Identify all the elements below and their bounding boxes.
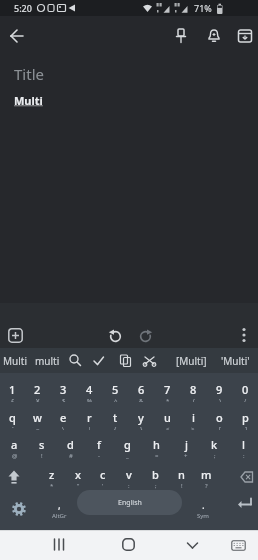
staticText: r [87,410,92,425]
button[interactable]: k [200,430,229,459]
staticText: = [155,452,159,459]
staticText: x [75,467,81,482]
staticText: a [11,437,18,452]
button[interactable]: e [50,402,76,430]
staticText: b [152,467,159,482]
button[interactable] [237,495,257,513]
button[interactable]: , [44,492,74,526]
button[interactable]: i [180,402,206,430]
staticText: 6 [138,382,145,397]
button[interactable]: m [194,459,218,490]
button[interactable]: 2 [25,373,50,402]
staticText: p [242,410,249,425]
button[interactable]: x [66,459,90,490]
staticText: ` [12,425,14,430]
button[interactable] [68,353,83,368]
staticText: g [124,437,131,452]
button[interactable]: h [142,430,171,459]
staticText: ; [155,482,157,490]
button[interactable]: 8 [180,373,206,402]
button[interactable]: r [76,402,102,430]
staticText: m [201,467,212,482]
button[interactable] [142,353,157,368]
staticText: 2 [34,382,41,397]
button[interactable]: l [229,430,258,459]
button[interactable]: w [25,402,50,430]
staticText: f [97,437,101,452]
button[interactable]: 9 [206,373,232,402]
button[interactable] [206,28,222,44]
button[interactable]: [Multi] [176,354,207,368]
button[interactable]: Multi [3,354,28,368]
button[interactable]: q [0,402,25,430]
button[interactable] [91,353,106,368]
button[interactable]: 3 [50,373,76,402]
staticText: 3 [60,382,67,397]
button[interactable] [107,327,123,343]
button[interactable] [173,28,189,44]
button[interactable]: d [56,430,84,459]
staticText: 0 [242,382,249,397]
button[interactable]: z [40,459,64,490]
staticText: { [114,425,117,430]
button[interactable]: c [91,459,115,490]
staticText: 1 [9,382,16,397]
button[interactable] [122,538,135,551]
button[interactable] [9,499,29,519]
staticText: t [113,410,118,425]
button[interactable]: n [169,459,193,490]
staticText: ! [41,452,43,459]
button[interactable]: u [154,402,180,430]
button[interactable]: v [117,459,141,490]
button[interactable]: multi [35,354,60,368]
button[interactable] [52,538,66,551]
button[interactable]: y [128,402,154,430]
button[interactable] [8,328,23,343]
button[interactable]: 4 [76,373,102,402]
button[interactable]: 7 [154,373,180,402]
button[interactable] [236,470,255,484]
button[interactable]: p [232,402,258,430]
staticText: [ [219,425,221,430]
button[interactable]: g [113,430,142,459]
button[interactable]: . [188,492,218,526]
staticText: ¥ [36,397,40,402]
button[interactable] [8,27,26,45]
button[interactable]: 1 [0,373,25,402]
button[interactable] [237,28,253,44]
staticText: % [87,397,92,402]
button[interactable]: a [0,430,28,459]
button[interactable]: f [84,430,113,459]
button[interactable]: b [143,459,167,490]
button[interactable]: 0 [232,373,258,402]
button[interactable]: English [77,490,182,515]
staticText: - [98,452,100,459]
staticText: } [140,425,143,430]
staticText: / [244,397,247,402]
button[interactable]: 6 [128,373,154,402]
staticText: 7 [164,382,171,397]
button[interactable] [186,541,199,550]
staticText: ~ [36,425,40,430]
button[interactable] [231,540,246,551]
staticText: j [185,437,188,452]
button[interactable]: j [171,430,200,459]
staticText: _ [126,452,129,459]
staticText: u [164,410,171,425]
button[interactable]: s [28,430,56,459]
staticText: @ [12,452,18,459]
button[interactable]: 5 [102,373,128,402]
staticText: $ [62,397,66,402]
button[interactable] [237,327,251,343]
staticText: ? [205,482,208,490]
staticText: n [178,467,185,482]
button[interactable] [118,353,133,368]
button[interactable]: 'Multi' [221,354,250,368]
button[interactable] [5,470,23,484]
button[interactable] [138,327,154,343]
button[interactable]: o [206,402,232,430]
staticText: English [118,498,142,508]
button[interactable]: t [102,402,128,430]
staticText: ! [181,482,183,490]
staticText: ' [102,482,104,490]
